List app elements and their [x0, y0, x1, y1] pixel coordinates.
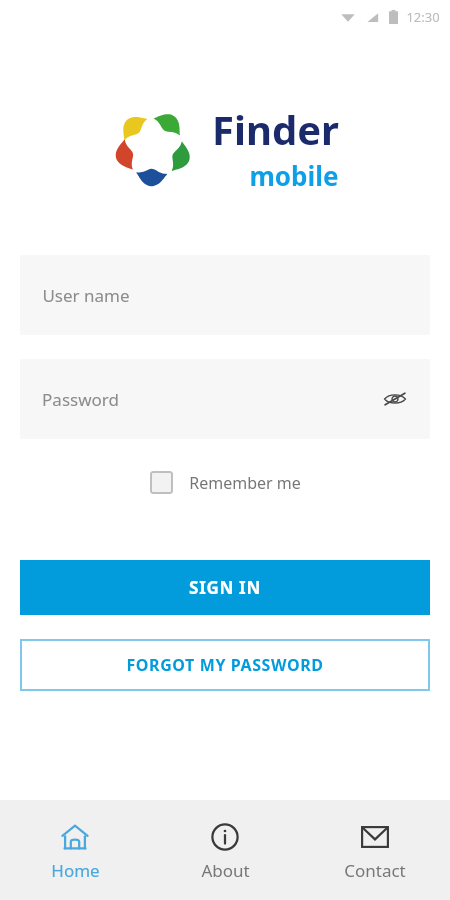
other: Contact [360, 822, 390, 852]
staticText: mobile [249, 158, 339, 193]
button[interactable]: Show password [378, 382, 412, 416]
button[interactable]: FORGOT MY PASSWORD [20, 639, 430, 691]
staticText: FORGOT MY PASSWORD [126, 654, 324, 676]
staticText: 12:30 [406, 8, 440, 26]
other: About [210, 822, 240, 852]
staticText: User name [42, 284, 130, 307]
other: Home [60, 822, 90, 852]
staticText: Remember me [189, 472, 301, 494]
button[interactable]: SIGN IN [20, 560, 430, 615]
staticText: Password [42, 388, 119, 411]
staticText: SIGN IN [189, 576, 261, 599]
button[interactable]: Contact [300, 800, 450, 882]
button[interactable]: Remember me [146, 467, 305, 498]
staticText: Finder [212, 102, 339, 156]
staticText: About [201, 859, 250, 882]
button[interactable]: Password [20, 359, 430, 439]
button[interactable]: Home [0, 800, 150, 882]
staticText: Contact [344, 859, 406, 882]
button[interactable]: About [150, 800, 300, 882]
button[interactable]: User name [20, 255, 430, 335]
staticText: Home [51, 859, 100, 882]
